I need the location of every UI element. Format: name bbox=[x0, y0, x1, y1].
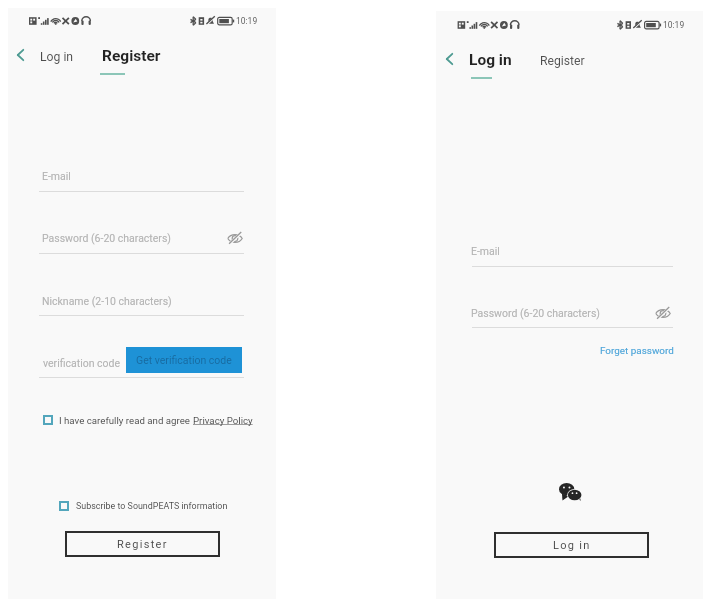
button[interactable]: Show password bbox=[222, 227, 248, 249]
button[interactable]: Subscribe to SoundPEATS information bbox=[59, 497, 228, 515]
staticText: verification code bbox=[43, 357, 121, 369]
button[interactable]: Forget password bbox=[589, 342, 674, 360]
staticText: Get verification code bbox=[136, 354, 232, 366]
button[interactable]: Log in bbox=[465, 48, 516, 72]
button[interactable]: Register bbox=[536, 51, 589, 71]
staticText: E-mail bbox=[42, 170, 71, 182]
staticText: E-mail bbox=[471, 245, 500, 257]
button[interactable]: Show password bbox=[650, 302, 676, 324]
staticText: Register bbox=[540, 54, 585, 68]
staticText: Password (6-20 characters) bbox=[42, 232, 171, 244]
staticText: Subscribe to SoundPEATS information bbox=[76, 501, 228, 511]
button[interactable]: Log in bbox=[36, 47, 78, 67]
staticText: Log in bbox=[40, 50, 74, 64]
button[interactable]: Back bbox=[437, 47, 461, 71]
button[interactable]: Log in bbox=[494, 532, 649, 558]
staticText: Forget password bbox=[600, 345, 674, 357]
staticText: Register bbox=[102, 47, 161, 65]
staticText: Privacy Policy bbox=[193, 415, 253, 426]
button[interactable]: Register bbox=[98, 44, 165, 68]
staticText: I have carefully read and agree bbox=[59, 415, 193, 426]
button[interactable]: Back bbox=[8, 43, 32, 67]
staticText: Log in bbox=[469, 51, 512, 69]
staticText: 10:19 bbox=[236, 16, 258, 26]
staticText: 10:19 bbox=[663, 20, 685, 30]
button[interactable]: Get verification code bbox=[126, 347, 242, 373]
button[interactable]: Register bbox=[65, 531, 220, 557]
staticText: Log in bbox=[553, 539, 591, 552]
staticText: Nickname (2-10 characters) bbox=[42, 295, 172, 307]
button[interactable]: Log in with WeChat bbox=[556, 478, 584, 506]
staticText: Password (6-20 characters) bbox=[471, 307, 600, 319]
staticText: Register bbox=[117, 538, 168, 551]
button[interactable]: I have carefully read and agree bbox=[43, 411, 253, 429]
